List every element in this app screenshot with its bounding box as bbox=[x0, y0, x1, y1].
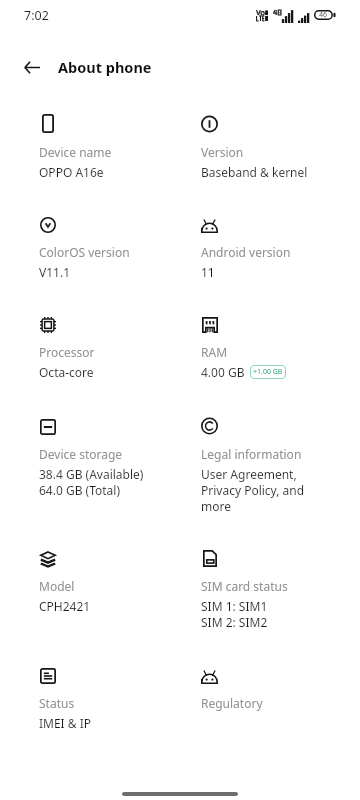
staticText: Octa-core bbox=[39, 364, 94, 380]
button[interactable]: Legal information bbox=[201, 416, 341, 514]
staticText: Legal information bbox=[201, 446, 302, 462]
button[interactable]: Regulatory bbox=[201, 665, 341, 715]
staticText: About phone bbox=[58, 57, 152, 77]
staticText: Android version bbox=[201, 244, 291, 260]
staticText: Version bbox=[201, 144, 244, 160]
staticText: +1.00 GB bbox=[253, 367, 283, 377]
staticText: User Agreement, bbox=[201, 466, 297, 482]
staticText: SIM 1: SIM1 bbox=[201, 598, 268, 614]
staticText: 7:02 bbox=[24, 7, 49, 24]
button[interactable]: Device name bbox=[39, 114, 189, 180]
staticText: Device storage bbox=[39, 446, 123, 462]
button[interactable]: SIM card status bbox=[201, 548, 341, 630]
staticText: Baseband & kernel bbox=[201, 164, 308, 180]
staticText: Privacy Policy, and bbox=[201, 482, 305, 498]
button[interactable]: Version bbox=[201, 114, 341, 180]
staticText: SIM 2: SIM2 bbox=[201, 614, 268, 630]
button[interactable]: Back bbox=[11, 46, 53, 88]
button[interactable]: Android version bbox=[201, 214, 341, 280]
staticText: more bbox=[201, 498, 231, 514]
staticText: Model bbox=[39, 578, 75, 594]
staticText: Regulatory bbox=[201, 695, 263, 711]
button[interactable]: Device storage bbox=[39, 416, 189, 498]
button[interactable]: RAM bbox=[201, 314, 341, 380]
button[interactable]: Processor bbox=[39, 314, 189, 380]
staticText: V11.1 bbox=[39, 264, 71, 280]
staticText: 38.4 GB (Available) bbox=[39, 466, 144, 482]
staticText: Device name bbox=[39, 144, 112, 160]
staticText: OPPO A16e bbox=[39, 164, 104, 180]
staticText: 11 bbox=[201, 264, 215, 280]
staticText: IMEI & IP bbox=[39, 715, 92, 731]
staticText: RAM bbox=[201, 344, 228, 360]
button[interactable]: Model bbox=[39, 548, 189, 614]
staticText: Status bbox=[39, 695, 75, 711]
staticText: CPH2421 bbox=[39, 598, 91, 614]
staticText: ColorOS version bbox=[39, 244, 130, 260]
staticText: 4.00 GB bbox=[201, 364, 245, 380]
staticText: SIM card status bbox=[201, 578, 288, 594]
staticText: 64.0 GB (Total) bbox=[39, 482, 121, 498]
staticText: 46 bbox=[319, 10, 328, 20]
staticText: Processor bbox=[39, 344, 95, 360]
button[interactable]: Status bbox=[39, 665, 189, 731]
button[interactable]: ColorOS version bbox=[39, 214, 189, 280]
